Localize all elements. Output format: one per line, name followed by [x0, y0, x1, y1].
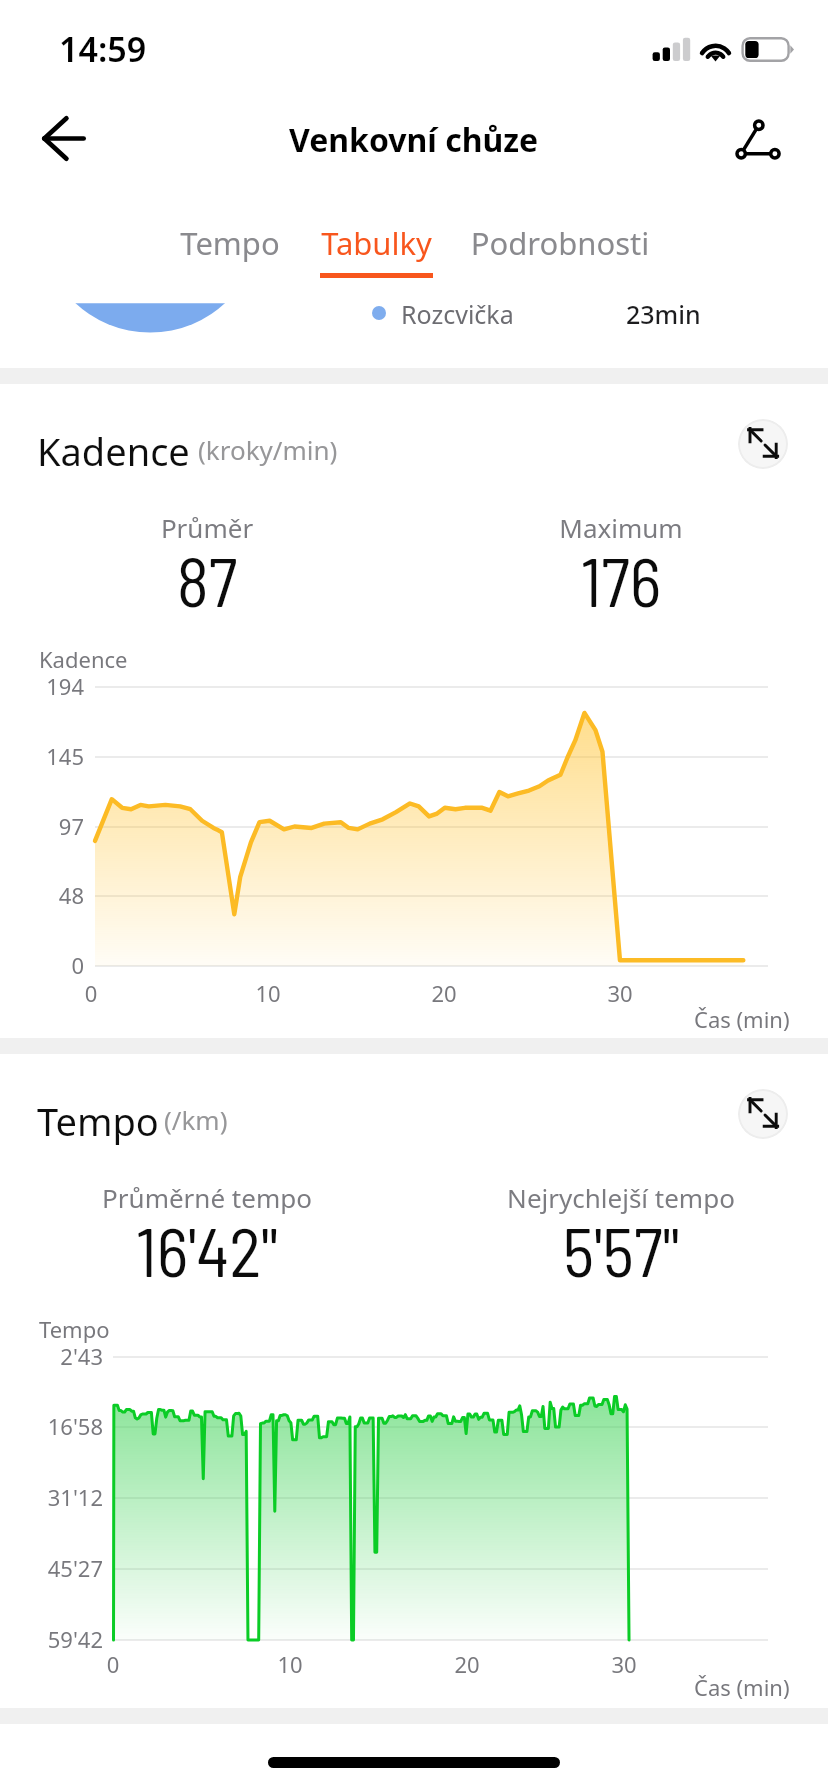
staticText: Kadence [39, 644, 128, 674]
staticText: 10 [228, 978, 308, 1008]
staticText: 30 [580, 978, 660, 1008]
staticText: (/km) [164, 1102, 228, 1137]
staticText: Průměr [7, 510, 407, 545]
staticText: Tempo [37, 1095, 159, 1147]
button[interactable]: Expand chart [738, 1089, 788, 1139]
staticText: 30 [584, 1649, 664, 1679]
staticText: Čas (min) [694, 1004, 790, 1034]
staticText: 87 [7, 539, 407, 621]
button[interactable]: Tempo [175, 222, 285, 278]
staticText: Kadence [37, 425, 190, 477]
staticText: Maximum [421, 510, 821, 545]
staticText: 59'42 [0, 1624, 103, 1654]
button[interactable]: Share [720, 92, 796, 188]
button[interactable]: Expand chart [738, 419, 788, 469]
staticText: 0 [73, 1649, 153, 1679]
button[interactable]: Back [22, 96, 106, 180]
staticText: Rozcvička [401, 297, 514, 331]
staticText: 194 [0, 671, 84, 701]
staticText: Tabulky [320, 222, 433, 264]
staticText: Podrobnosti [465, 222, 655, 264]
staticText: 31'12 [0, 1482, 103, 1512]
staticText: 2'43 [0, 1341, 103, 1371]
staticText: 48 [0, 880, 84, 910]
staticText: Venkovní chůze [289, 118, 539, 162]
staticText: 23min [626, 297, 701, 331]
staticText: 0 [0, 950, 84, 980]
staticText: Tempo [39, 1314, 110, 1344]
staticText: 20 [427, 1649, 507, 1679]
staticText: Nejrychlejší tempo [421, 1180, 821, 1215]
staticText: Tempo [175, 222, 285, 264]
staticText: 5'57" [421, 1209, 821, 1291]
staticText: 14:59 [59, 26, 147, 72]
staticText: Čas (min) [694, 1672, 790, 1702]
staticText: 10 [250, 1649, 330, 1679]
staticText: 16'42" [7, 1209, 407, 1291]
staticText: 0 [51, 978, 131, 1008]
staticText: 20 [404, 978, 484, 1008]
button[interactable]: Podrobnosti [465, 222, 655, 278]
button[interactable]: Tabulky [320, 222, 433, 278]
staticText: 45'27 [0, 1553, 103, 1583]
staticText: 97 [0, 811, 84, 841]
staticText: 16'58 [0, 1411, 103, 1441]
staticText: (kroky/min) [198, 432, 338, 467]
staticText: 145 [0, 741, 84, 771]
staticText: Průměrné tempo [7, 1180, 407, 1215]
staticText: 176 [421, 539, 821, 621]
